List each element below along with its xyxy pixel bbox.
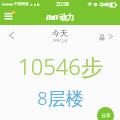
button[interactable]: Privacy <box>98 32 116 41</box>
staticText: 动力 <box>59 13 74 22</box>
button[interactable]: Menu <box>4 11 15 21</box>
staticText: E <box>37 2 39 7</box>
button[interactable]: Previous day <box>5 29 17 41</box>
button[interactable]: Share <box>97 107 114 120</box>
staticText: 中国联通 <box>14 2 29 7</box>
staticText: 10546步 <box>18 51 103 81</box>
staticText: lldl <box>46 12 58 22</box>
staticText: 刚刚上传 <box>53 39 68 44</box>
staticText: 今天 <box>52 28 68 38</box>
staticText: 20:58 <box>56 1 69 8</box>
staticText: 8层楼 <box>37 86 84 111</box>
staticText: 34% <box>101 2 109 7</box>
staticText: 分享 <box>101 113 111 119</box>
